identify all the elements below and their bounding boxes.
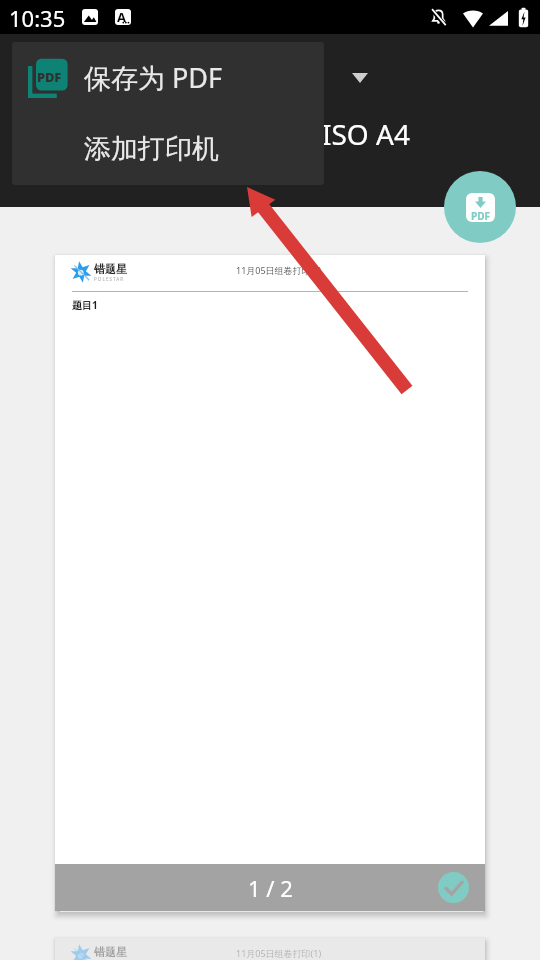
staticText: PDF [37, 68, 61, 86]
staticText: PDF [471, 209, 491, 222]
staticText: 11月05日组卷打印(1) [236, 947, 322, 959]
button[interactable]: 添加打印机 [12, 113, 324, 185]
staticText: 错题星 [94, 945, 127, 959]
staticText: 错题星 [94, 262, 127, 276]
button[interactable]: Save as PDF [444, 171, 516, 243]
staticText: POLESTAR [94, 276, 125, 282]
staticText: ISO A4 [322, 115, 410, 153]
button[interactable]: Page selected [438, 872, 469, 903]
staticText: A [117, 8, 126, 26]
staticText: 10:35 [9, 3, 66, 33]
button[interactable]: PDF [12, 42, 324, 113]
staticText: 题目1 [72, 298, 98, 312]
staticText: 保存为 PDF [84, 59, 223, 96]
staticText: 添加打印机 [84, 132, 219, 166]
staticText: 1 / 2 [248, 873, 293, 903]
staticText: 11月05日组卷打印(1) [236, 264, 322, 276]
